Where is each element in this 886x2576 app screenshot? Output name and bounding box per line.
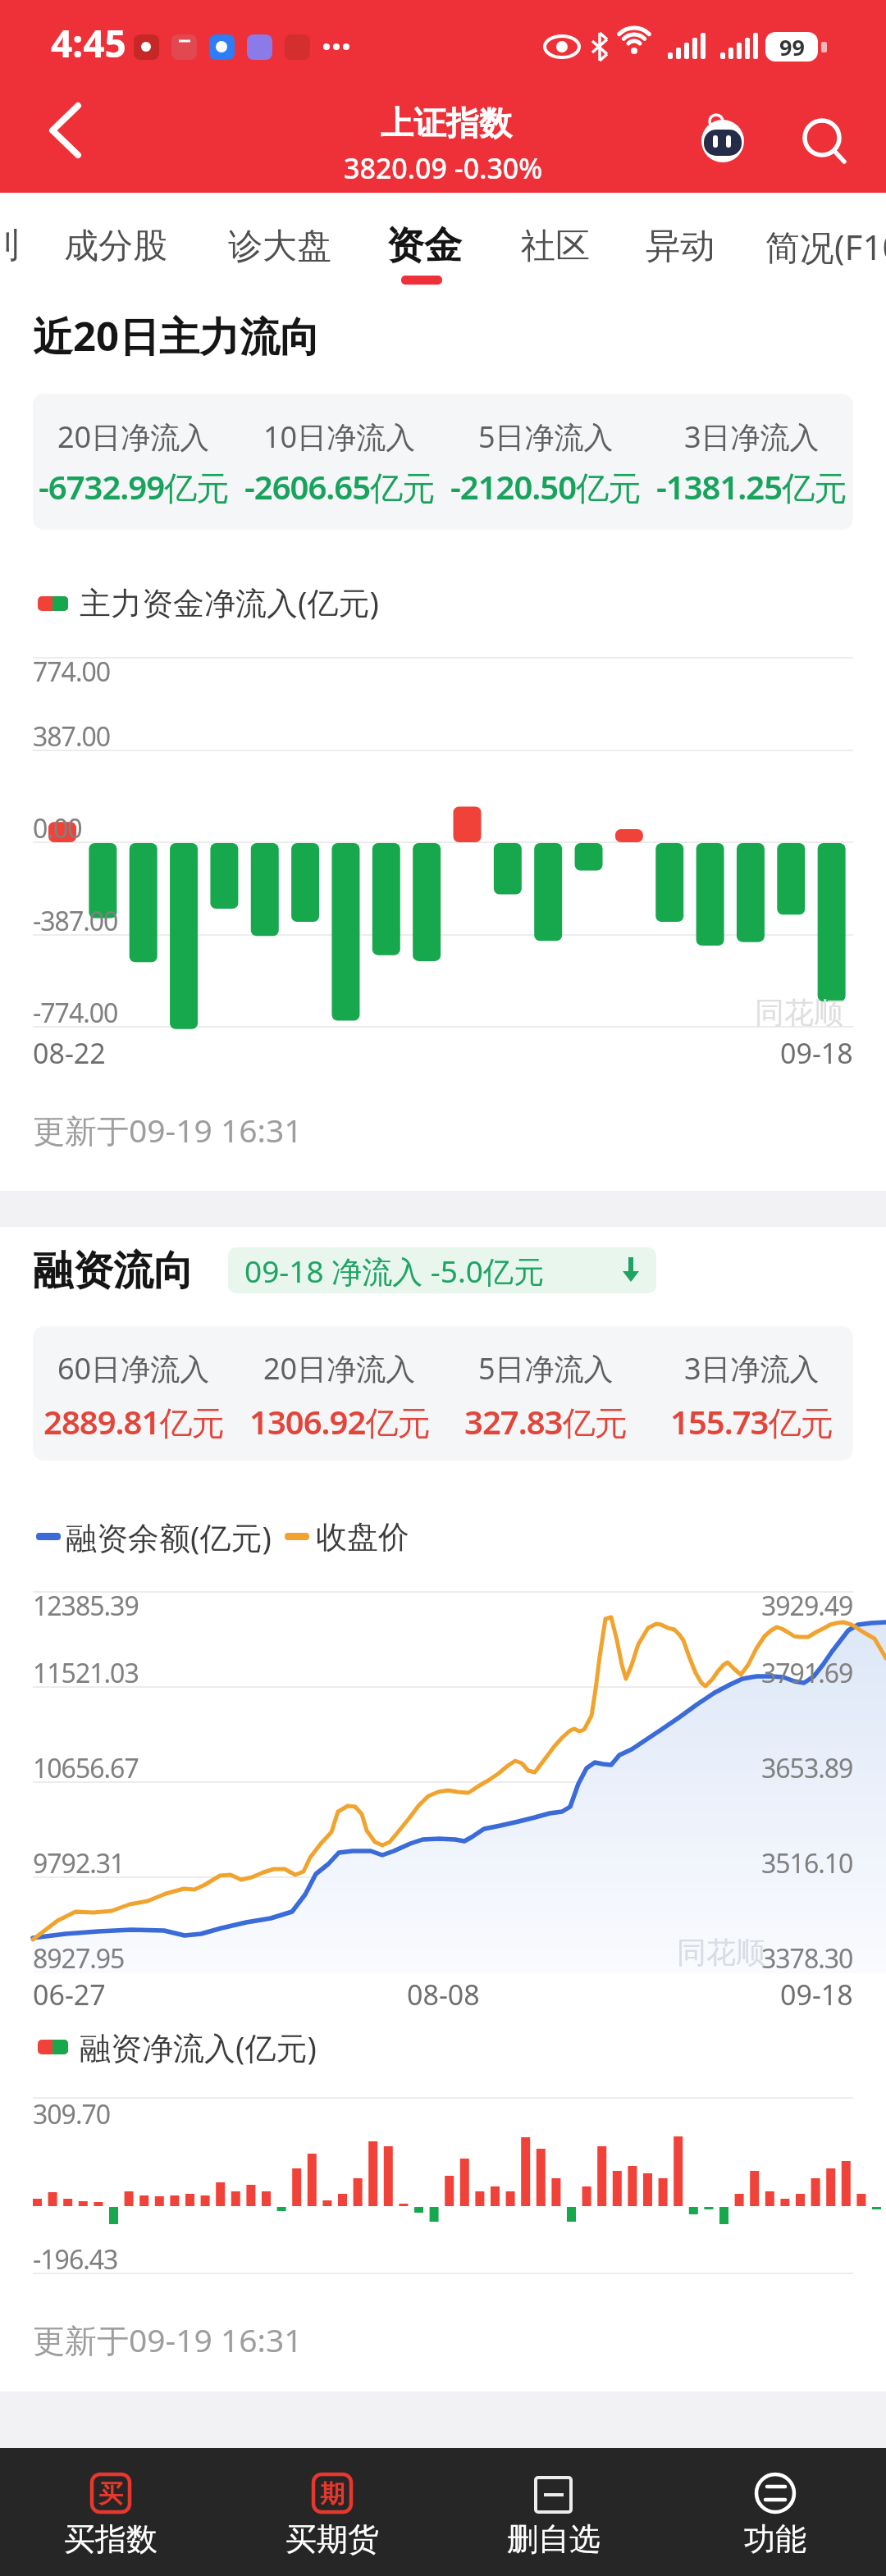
staticText: 上证指数 <box>381 103 512 144</box>
staticText: 买指数 <box>64 2519 158 2559</box>
button[interactable] <box>693 2452 857 2572</box>
staticText: 3日净流入 <box>684 417 820 457</box>
staticText: -2606.65亿元 <box>244 464 435 509</box>
staticText: 12385.39 <box>33 1588 139 1624</box>
button[interactable] <box>697 112 747 161</box>
staticText: 诊大盘 <box>228 225 331 268</box>
staticText: 同花顺 <box>677 1934 765 1971</box>
staticText: 309.70 <box>33 2096 111 2132</box>
button[interactable] <box>796 107 853 164</box>
staticText: 2889.81亿元 <box>43 1399 224 1444</box>
staticText: 3日净流入 <box>684 1348 820 1388</box>
staticText: 期 <box>320 2478 345 2510</box>
staticText: 5日净流入 <box>478 1348 614 1388</box>
staticText: 更新于09-19 16:31 <box>33 1108 303 1151</box>
staticText: 99 <box>779 32 805 62</box>
button[interactable] <box>250 2452 414 2572</box>
staticText: 4:45 <box>51 17 126 69</box>
staticText: -196.43 <box>33 2241 118 2277</box>
staticText: 主力资金净流入(亿元) <box>80 581 379 623</box>
staticText: 3820.09 -0.30% <box>344 149 543 187</box>
staticText: 简况(F10) <box>765 223 886 270</box>
staticText: 成分股 <box>64 225 167 268</box>
button[interactable]: 成分股 <box>0 217 403 276</box>
button[interactable]: 异动 <box>393 217 886 276</box>
staticText: 3791.69 <box>761 1655 853 1691</box>
staticText: 删自选 <box>507 2519 601 2559</box>
staticText: -1381.25亿元 <box>656 464 847 509</box>
staticText: 融资流向 <box>33 1246 194 1297</box>
staticText: 买期货 <box>285 2519 379 2559</box>
staticText: 20日净流入 <box>263 1348 416 1388</box>
staticText: 10日净流入 <box>263 417 416 457</box>
button[interactable] <box>33 394 853 530</box>
staticText: 08-22 <box>33 1034 106 1072</box>
staticText: 11521.03 <box>33 1655 139 1691</box>
staticText: 3653.89 <box>761 1750 853 1786</box>
staticText: 同花顺 <box>755 994 843 1031</box>
staticText: 功能 <box>744 2519 806 2559</box>
staticText: 融资余额(亿元) <box>66 1516 272 1558</box>
staticText: 收盘价 <box>316 1517 409 1557</box>
button[interactable]: 资金 <box>137 214 711 278</box>
staticText: 774.00 <box>33 654 111 690</box>
staticText: -6732.99亿元 <box>39 464 229 509</box>
staticText: -774.00 <box>33 995 118 1031</box>
staticText: 06-27 <box>33 1976 106 2013</box>
button[interactable] <box>472 2452 636 2572</box>
staticText: 20日净流入 <box>57 417 210 457</box>
staticText: 社区 <box>521 225 590 268</box>
button[interactable]: 诊大盘 <box>0 217 567 276</box>
staticText: 近20日主力流向 <box>33 308 321 363</box>
staticText: 融资净流入(亿元) <box>80 2026 317 2068</box>
staticText: 5日净流入 <box>478 417 614 457</box>
staticText: 327.83亿元 <box>464 1399 627 1444</box>
staticText: -2120.50亿元 <box>450 464 641 509</box>
staticText: 155.73亿元 <box>670 1399 833 1444</box>
staticText: 08-08 <box>407 1976 480 2013</box>
staticText: 09-18 <box>780 1976 853 2013</box>
staticText: 更新于09-19 16:31 <box>33 2318 303 2361</box>
staticText: 387.00 <box>33 718 111 755</box>
staticText: 09-18 净流入 -5.0亿元 <box>244 1250 544 1292</box>
staticText: -387.00 <box>33 903 118 939</box>
button[interactable] <box>228 1247 656 1293</box>
staticText: 买 <box>98 2478 123 2510</box>
button[interactable]: 简况(F10) <box>765 217 886 276</box>
staticText: 资金 <box>386 222 462 270</box>
staticText: 1306.92亿元 <box>249 1399 430 1444</box>
button[interactable] <box>33 1326 853 1461</box>
button[interactable] <box>29 2452 193 2572</box>
staticText: 10656.67 <box>33 1750 139 1786</box>
staticText: 异动 <box>646 225 715 268</box>
button[interactable]: 社区 <box>268 217 843 276</box>
staticText: 8927.95 <box>33 1940 125 1976</box>
button[interactable] <box>33 98 98 164</box>
staticText: 9792.31 <box>33 1845 125 1881</box>
staticText: 3929.49 <box>761 1588 853 1624</box>
staticText: 刂 <box>0 225 23 268</box>
staticText: 3378.30 <box>761 1940 853 1976</box>
staticText: 3516.10 <box>761 1845 853 1881</box>
staticText: 0.00 <box>33 810 82 846</box>
staticText: 09-18 <box>780 1034 853 1072</box>
staticText: 60日净流入 <box>57 1348 210 1388</box>
